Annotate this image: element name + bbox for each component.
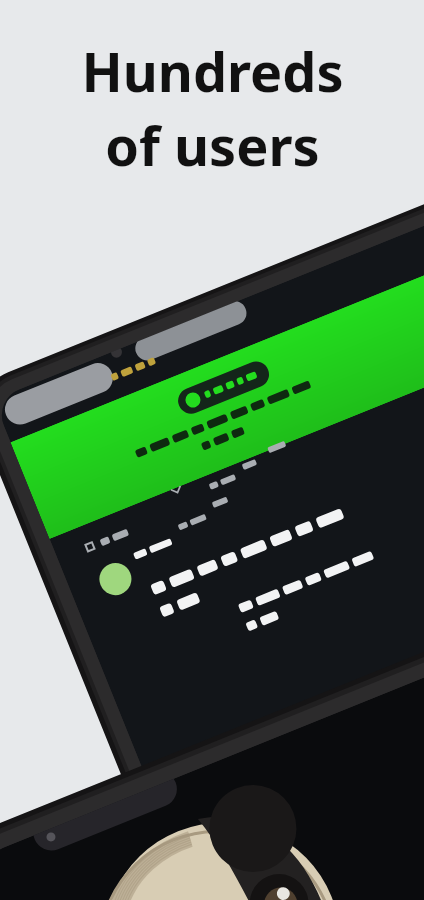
button[interactable]: App preview on two phones <box>0 0 424 900</box>
staticText: of users <box>105 108 320 182</box>
staticText: Hundreds <box>81 34 344 108</box>
